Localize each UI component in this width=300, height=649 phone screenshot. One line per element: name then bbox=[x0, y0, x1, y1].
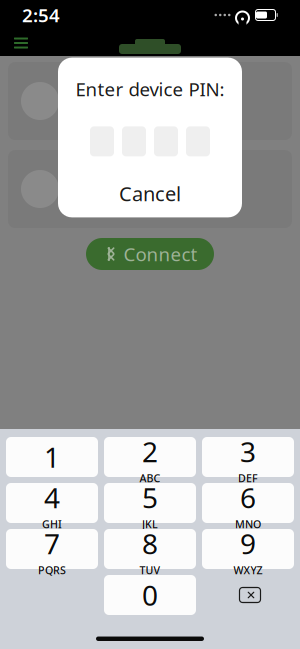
staticText: ABC bbox=[139, 471, 160, 485]
staticText: MNO bbox=[235, 517, 261, 531]
button[interactable]: Connect bbox=[86, 238, 214, 270]
staticText: 8 bbox=[142, 525, 158, 562]
button[interactable]: Cancel bbox=[58, 176, 242, 210]
staticText: 9 bbox=[240, 525, 256, 562]
button[interactable]: 7 bbox=[6, 529, 98, 569]
staticText: 4 bbox=[44, 479, 60, 516]
staticText: JKL bbox=[142, 517, 158, 531]
staticText: 5 bbox=[142, 479, 158, 516]
button[interactable]: 6 bbox=[202, 483, 294, 523]
button[interactable]: Delete bbox=[202, 575, 294, 615]
staticText: 2 bbox=[142, 433, 158, 470]
staticText: 0 bbox=[142, 576, 158, 614]
staticText: TUV bbox=[139, 563, 160, 577]
button[interactable]: 4 bbox=[6, 483, 98, 523]
staticText: 6 bbox=[240, 479, 256, 516]
button[interactable]: 5 bbox=[104, 483, 196, 523]
staticText: DEF bbox=[238, 471, 258, 485]
button[interactable]: 0 bbox=[104, 575, 196, 615]
staticText: 7 bbox=[44, 525, 60, 562]
staticText: Enter device PIN: bbox=[75, 77, 224, 101]
staticText: GHI bbox=[42, 517, 62, 531]
button[interactable]: 1 bbox=[6, 437, 98, 477]
staticText: 1 bbox=[44, 438, 60, 476]
button[interactable]: Menu bbox=[4, 28, 38, 58]
button[interactable]: 3 bbox=[202, 437, 294, 477]
button[interactable]: 9 bbox=[202, 529, 294, 569]
staticText: 3 bbox=[240, 433, 256, 470]
staticText: WXYZ bbox=[233, 563, 262, 577]
button[interactable]: 2 bbox=[104, 437, 196, 477]
button[interactable]: 8 bbox=[104, 529, 196, 569]
staticText: PQRS bbox=[38, 563, 66, 577]
staticText: Connect bbox=[123, 242, 197, 266]
staticText: Cancel bbox=[119, 180, 181, 207]
staticText: 2:54 bbox=[22, 3, 60, 27]
